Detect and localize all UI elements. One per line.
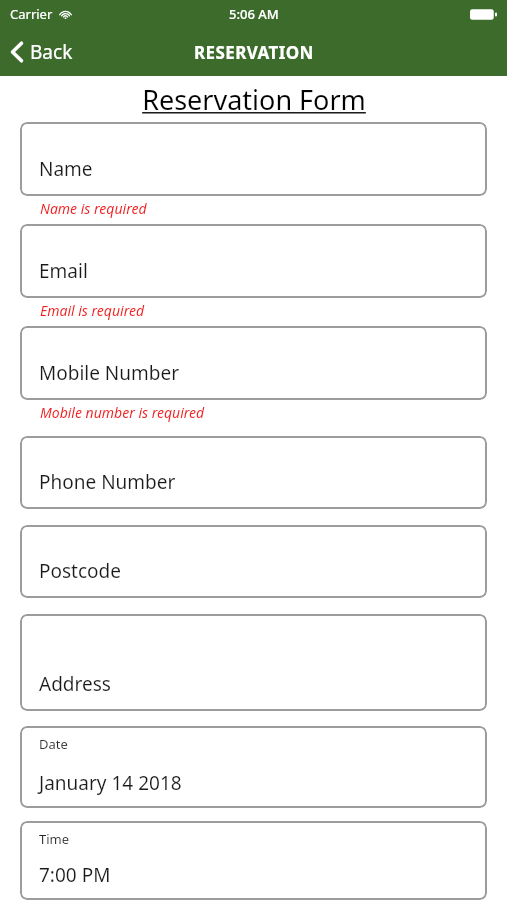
staticText: Name is required [40, 199, 147, 218]
button[interactable]: Email [20, 224, 487, 298]
staticText: Email is required [40, 301, 145, 320]
button[interactable]: Mobile Number [20, 326, 487, 400]
staticText: Mobile Number [39, 360, 180, 386]
staticText: 7:00 PM [39, 862, 111, 888]
staticText: Time [39, 830, 70, 848]
staticText: Date [39, 735, 68, 753]
staticText: Back [30, 39, 73, 65]
staticText: Reservation Form [142, 81, 366, 118]
staticText: Mobile number is required [40, 403, 205, 422]
staticText: Carrier [10, 5, 53, 23]
staticText: Phone Number [39, 469, 176, 495]
staticText: 5:06 AM [229, 5, 279, 23]
staticText: January 14 2018 [39, 770, 182, 796]
button[interactable]: Name [20, 122, 487, 196]
button[interactable]: Phone Number [20, 436, 487, 509]
staticText: RESERVATION [194, 41, 314, 64]
staticText: Name [39, 156, 93, 182]
button[interactable]: Back [0, 33, 85, 71]
button[interactable]: Time [20, 821, 487, 900]
staticText: Postcode [39, 558, 121, 584]
button[interactable]: Date [20, 726, 487, 808]
button[interactable]: Address [20, 614, 487, 711]
staticText: Address [39, 671, 111, 697]
button[interactable]: Postcode [20, 525, 487, 598]
staticText: Email [39, 258, 88, 284]
